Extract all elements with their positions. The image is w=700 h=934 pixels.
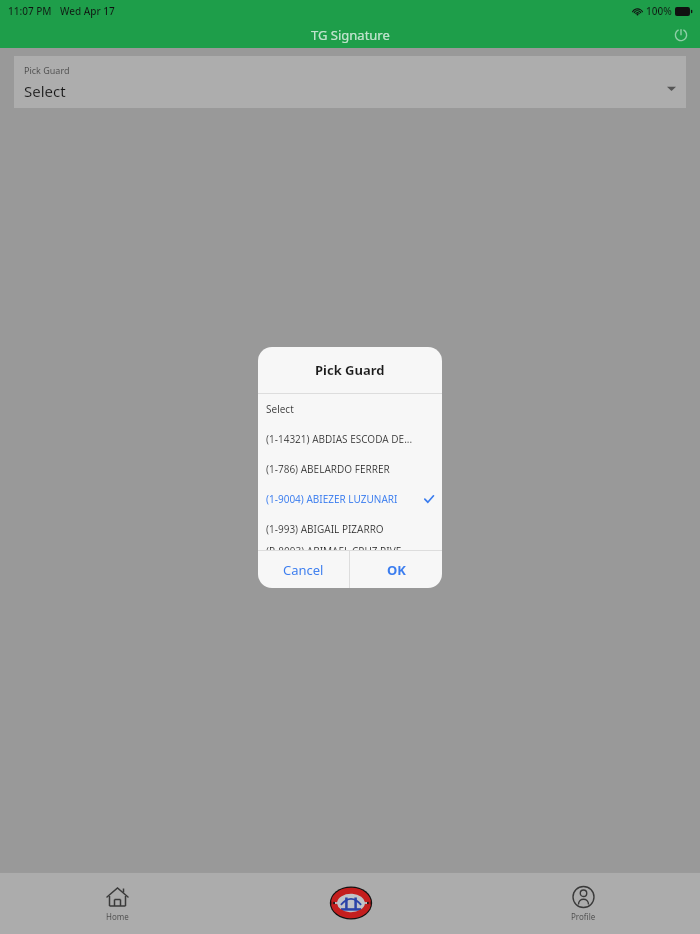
staticText: Select — [266, 402, 294, 416]
staticText: Home — [106, 911, 129, 922]
button[interactable]: (1-993) ABIGAIL PIZARRO — [258, 514, 442, 544]
button[interactable]: (P-8093) ABIMAEL CRUZ RIVE — [258, 544, 442, 550]
staticText: 100% — [646, 4, 672, 18]
button[interactable]: OK — [350, 551, 442, 588]
staticText: Pick Guard — [315, 361, 385, 379]
button[interactable]: Select — [258, 394, 442, 424]
button[interactable]: Pick Guard — [14, 56, 686, 108]
staticText: OK — [387, 561, 406, 579]
staticText: Pick Guard — [24, 64, 70, 76]
button[interactable]: Home — [101, 881, 134, 926]
staticText: (1-786) ABELARDO FERRER — [266, 462, 390, 476]
button[interactable]: Power / Log out — [670, 24, 692, 46]
staticText: (1-993) ABIGAIL PIZARRO — [266, 522, 384, 536]
staticText: (P-8093) ABIMAEL CRUZ RIVE — [266, 544, 402, 550]
staticText: Select — [24, 81, 66, 101]
staticText: TG Signature — [311, 26, 390, 44]
staticText: (1-9004) ABIEZER LUZUNARI — [266, 492, 398, 506]
staticText: Cancel — [283, 561, 324, 579]
button[interactable]: (1-786) ABELARDO FERRER — [258, 454, 442, 484]
button[interactable]: Cancel — [258, 551, 349, 588]
staticText: Wed Apr 17 — [60, 4, 115, 18]
button[interactable]: Bridge Security home — [328, 880, 374, 926]
button[interactable]: Profile — [567, 881, 600, 926]
staticText: 11:07 PM — [8, 4, 52, 18]
staticText: Profile — [571, 911, 596, 922]
button[interactable]: (1-14321) ABDIAS ESCODA DE... — [258, 424, 442, 454]
button[interactable]: (1-9004) ABIEZER LUZUNARI — [258, 484, 442, 514]
staticText: (1-14321) ABDIAS ESCODA DE... — [266, 432, 413, 446]
